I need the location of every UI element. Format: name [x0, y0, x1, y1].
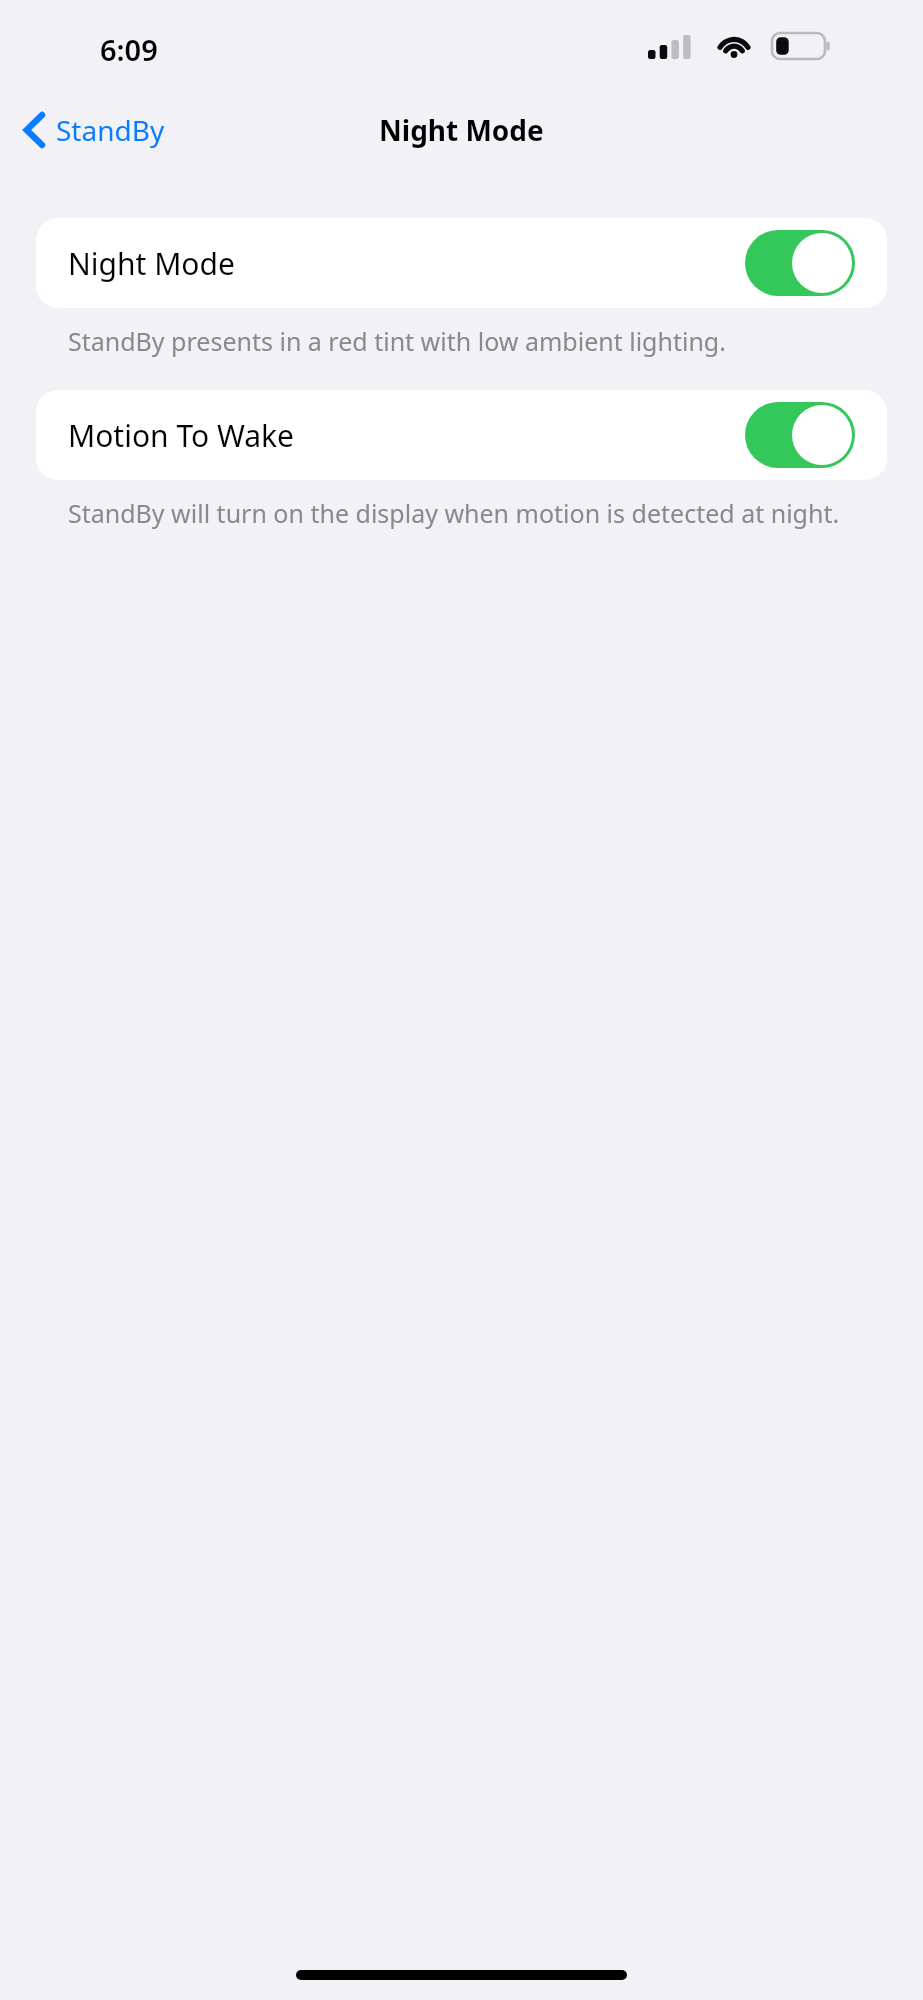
button[interactable]: Motion To Wake [36, 390, 887, 480]
staticText: StandBy [56, 111, 165, 149]
staticText: Night Mode [379, 111, 544, 149]
staticText: Night Mode [68, 243, 235, 284]
button[interactable]: Toggle [745, 230, 855, 296]
staticText: 6:09 [100, 30, 158, 69]
button[interactable]: Toggle [745, 402, 855, 468]
button[interactable]: Night Mode [36, 218, 887, 308]
staticText: Motion To Wake [68, 415, 295, 456]
staticText: StandBy presents in a red tint with low … [68, 324, 863, 358]
button[interactable]: StandBy [18, 105, 171, 155]
staticText: StandBy will turn on the display when mo… [68, 496, 863, 530]
